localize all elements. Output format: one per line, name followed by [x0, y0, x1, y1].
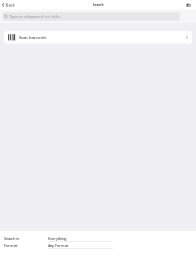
staticText: Everything	[48, 236, 66, 241]
staticText: Type in a keyword or title...	[9, 13, 62, 19]
staticText: Back	[5, 2, 14, 8]
staticText: Scan barcode	[19, 34, 46, 40]
staticText: Format	[4, 243, 17, 248]
button[interactable]: Format	[4, 243, 196, 249]
staticText: Search in	[4, 236, 19, 241]
button[interactable]: Back	[0, 0, 17, 10]
button[interactable]: Scan cover	[184, 0, 193, 9]
button[interactable]: Search in	[4, 236, 196, 242]
staticText: Any Format	[48, 243, 68, 248]
staticText: Search	[92, 3, 103, 7]
button[interactable]: Scan barcode	[0, 31, 196, 43]
